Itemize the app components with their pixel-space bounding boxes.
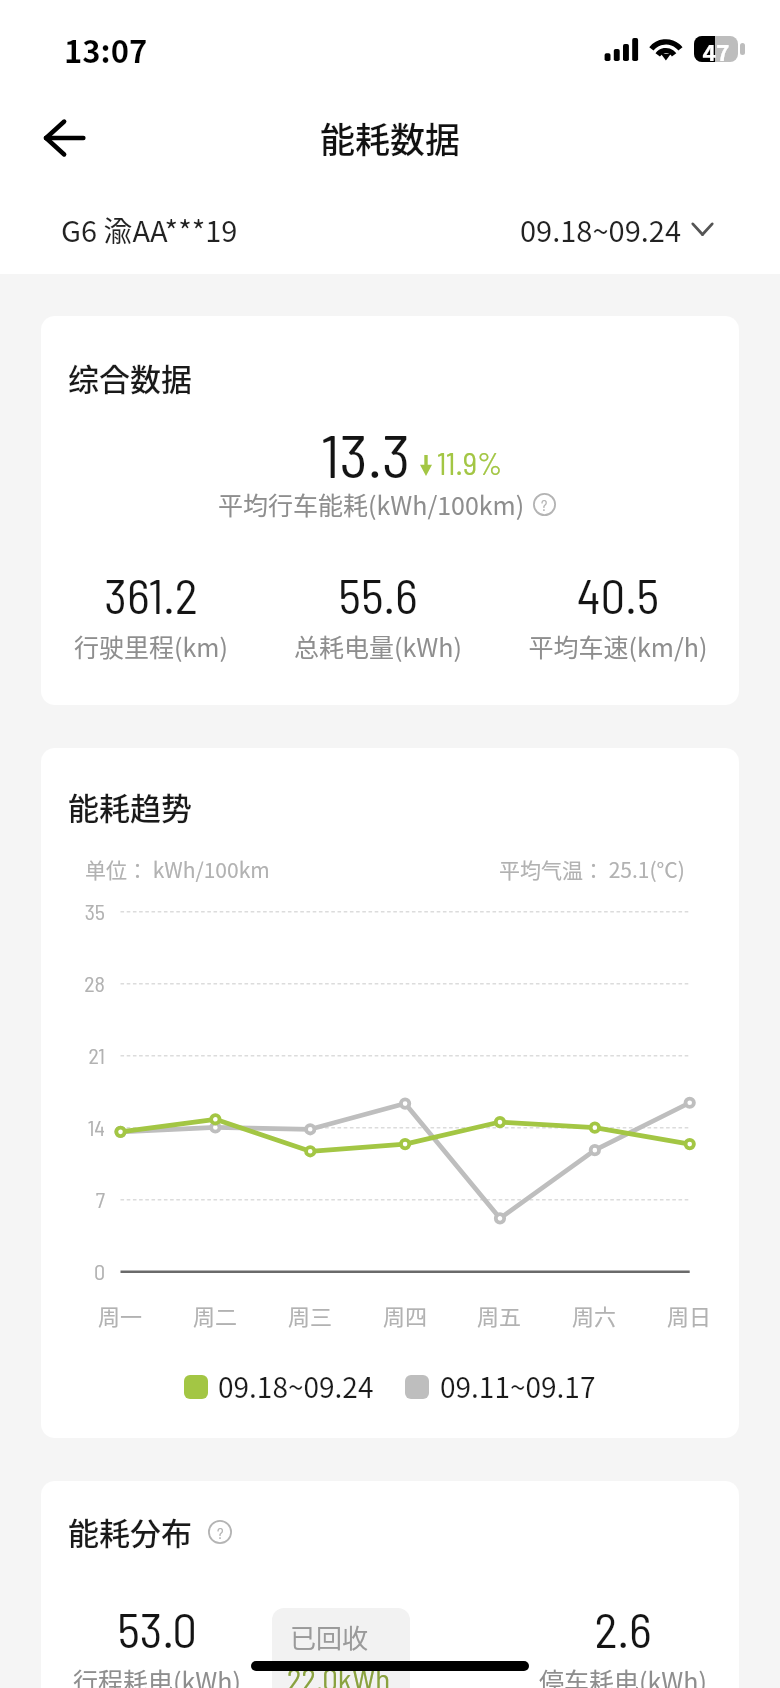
staticText: 单位： kWh/100km bbox=[85, 854, 270, 884]
staticText: 周四 bbox=[205, 1299, 605, 1331]
staticText: 09.11~09.17 bbox=[440, 1366, 596, 1407]
staticText: ? bbox=[541, 496, 548, 514]
staticText: 能耗趋势 bbox=[68, 784, 192, 829]
staticText: 53.0 bbox=[41, 1599, 357, 1658]
staticText: 40.5 bbox=[418, 565, 739, 624]
staticText: 09.18~09.24 bbox=[218, 1366, 374, 1407]
staticText: 能耗数据 bbox=[190, 112, 590, 163]
staticText: 13.3 bbox=[321, 417, 411, 490]
staticText: 总耗电量(kWh) bbox=[178, 628, 578, 664]
staticText: 11.9% bbox=[437, 444, 503, 481]
staticText: 09.18~09.24 bbox=[520, 208, 681, 250]
staticText: 周五 bbox=[299, 1299, 699, 1331]
staticText: 停车耗电(kWh) bbox=[423, 1662, 739, 1688]
button[interactable]: Back bbox=[36, 108, 96, 168]
staticText: 14 bbox=[45, 1114, 105, 1140]
staticText: 行程耗电(kWh) bbox=[41, 1662, 357, 1688]
staticText: ? bbox=[217, 1523, 224, 1542]
staticText: 周二 bbox=[41, 1299, 415, 1331]
staticText: 平均气温： 25.1(°C) bbox=[499, 854, 685, 884]
staticText: 2.6 bbox=[423, 1599, 739, 1658]
staticText: 55.6 bbox=[178, 565, 578, 624]
staticText: 周一 bbox=[41, 1299, 320, 1331]
staticText: 综合数据 bbox=[68, 355, 192, 400]
staticText: 0 bbox=[45, 1258, 105, 1284]
staticText: 周三 bbox=[110, 1299, 510, 1331]
staticText: 35 bbox=[45, 898, 105, 924]
staticText: 行驶里程(km) bbox=[41, 628, 351, 664]
staticText: 周六 bbox=[394, 1299, 739, 1331]
button[interactable]: 09.18~09.24 bbox=[516, 204, 719, 254]
staticText: 平均车速(km/h) bbox=[418, 628, 739, 664]
staticText: 21 bbox=[45, 1042, 105, 1068]
staticText: 7 bbox=[45, 1186, 105, 1212]
staticText: 13:07 bbox=[64, 27, 148, 72]
staticText: 28 bbox=[45, 970, 105, 996]
staticText: 已回收 bbox=[290, 1618, 369, 1656]
staticText: 22.0kWh bbox=[287, 1660, 391, 1688]
staticText: 47 bbox=[702, 35, 730, 61]
staticText: 能耗分布 bbox=[68, 1509, 192, 1554]
staticText: 361.2 bbox=[41, 565, 351, 624]
staticText: G6 渝AA***19 bbox=[61, 208, 238, 250]
staticText: 平均行车能耗(kWh/100km) bbox=[218, 486, 525, 522]
staticText: 周日 bbox=[489, 1299, 739, 1331]
